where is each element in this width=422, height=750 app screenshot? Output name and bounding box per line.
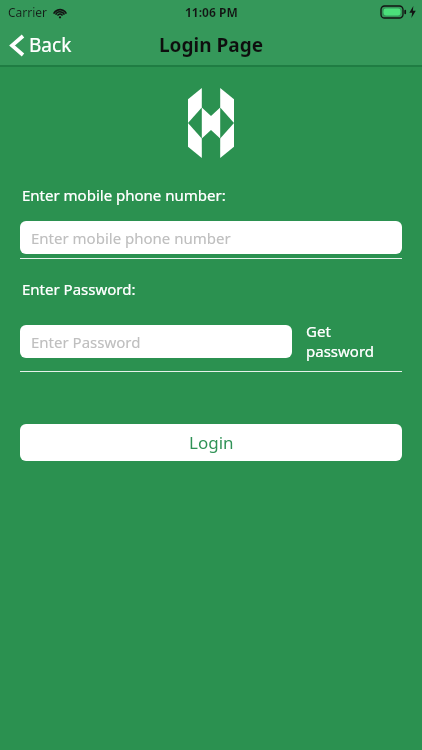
staticText: Enter Password	[31, 332, 141, 352]
staticText: Back	[29, 32, 72, 58]
button[interactable]: Enter Password	[20, 325, 292, 358]
staticText: Login Page	[159, 32, 264, 58]
staticText: Get password	[306, 321, 402, 361]
other: Back	[12, 36, 23, 55]
staticText: Carrier	[8, 4, 48, 20]
button[interactable]: Back	[0, 26, 84, 64]
staticText: Enter Password:	[22, 279, 136, 299]
other: Charging	[409, 6, 416, 18]
button[interactable]: Get password	[292, 315, 402, 367]
other: Battery	[381, 6, 406, 18]
staticText: Login	[189, 431, 234, 454]
other: Wi-Fi	[53, 7, 67, 18]
button[interactable]: Login	[20, 424, 402, 461]
button[interactable]: Enter mobile phone number	[20, 221, 402, 254]
staticText: 11:06 PM	[185, 4, 238, 20]
staticText: Enter mobile phone number:	[22, 185, 226, 205]
staticText: Enter mobile phone number	[31, 228, 231, 248]
